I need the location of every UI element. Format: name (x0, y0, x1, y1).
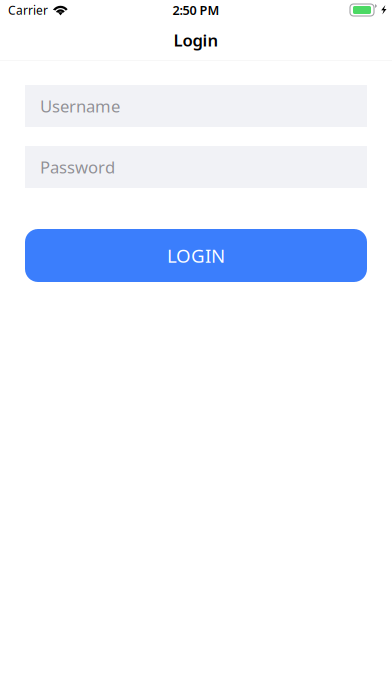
button[interactable]: Password (25, 146, 367, 188)
staticText: LOGIN (167, 243, 225, 268)
staticText: Login (173, 29, 218, 51)
staticText: Carrier (8, 2, 48, 18)
staticText: 2:50 PM (172, 1, 219, 19)
staticText: Password (40, 156, 115, 178)
staticText: Username (40, 95, 120, 117)
button[interactable]: LOGIN (25, 229, 367, 282)
button[interactable]: Username (25, 85, 367, 127)
